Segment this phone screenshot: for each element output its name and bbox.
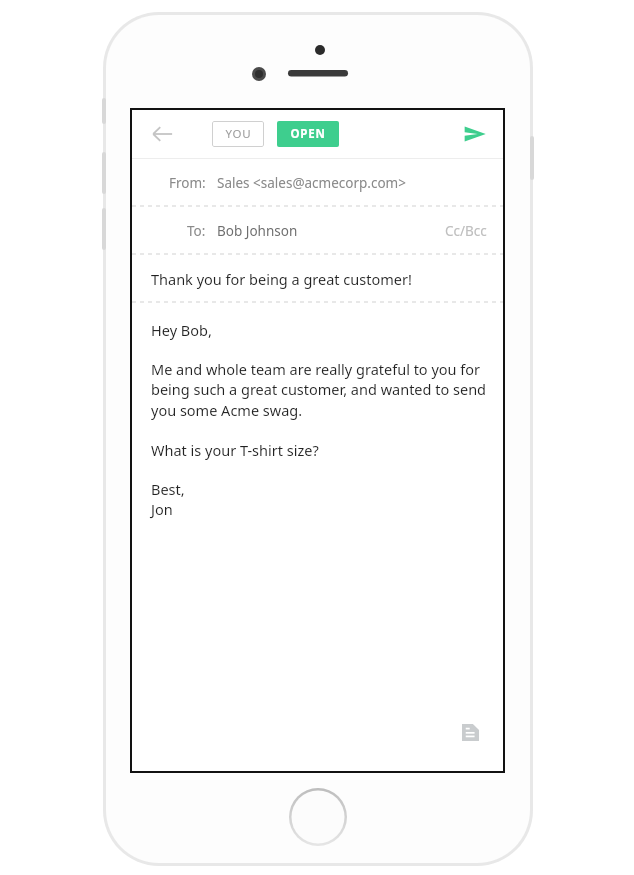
button[interactable]: OPEN (277, 121, 339, 147)
staticText: Hey Bob, (151, 320, 212, 340)
staticText: Thank you for being a great customer! (151, 269, 412, 289)
staticText: Best, Jon (151, 479, 185, 520)
button[interactable]: YOU (212, 121, 264, 147)
staticText: To: (187, 222, 206, 240)
staticText: Cc/Bcc (445, 222, 487, 240)
staticText: Bob Johnson (217, 222, 298, 240)
staticText: From: (169, 174, 206, 192)
staticText: YOU (225, 126, 252, 142)
staticText: What is your T-shirt size? (151, 440, 319, 460)
button[interactable]: Send (453, 112, 497, 156)
button[interactable]: Attach document (455, 717, 485, 747)
staticText: Sales <sales@acmecorp.com> (217, 174, 406, 192)
staticText: Me and whole team are really grateful to… (151, 359, 487, 421)
staticText: OPEN (290, 126, 326, 142)
button[interactable]: Back (142, 114, 182, 154)
button[interactable]: To: (132, 207, 503, 254)
button[interactable]: From: (132, 159, 503, 206)
button[interactable]: Cc/Bcc (441, 222, 491, 240)
button[interactable]: Thank you for being a great customer! (132, 255, 503, 302)
